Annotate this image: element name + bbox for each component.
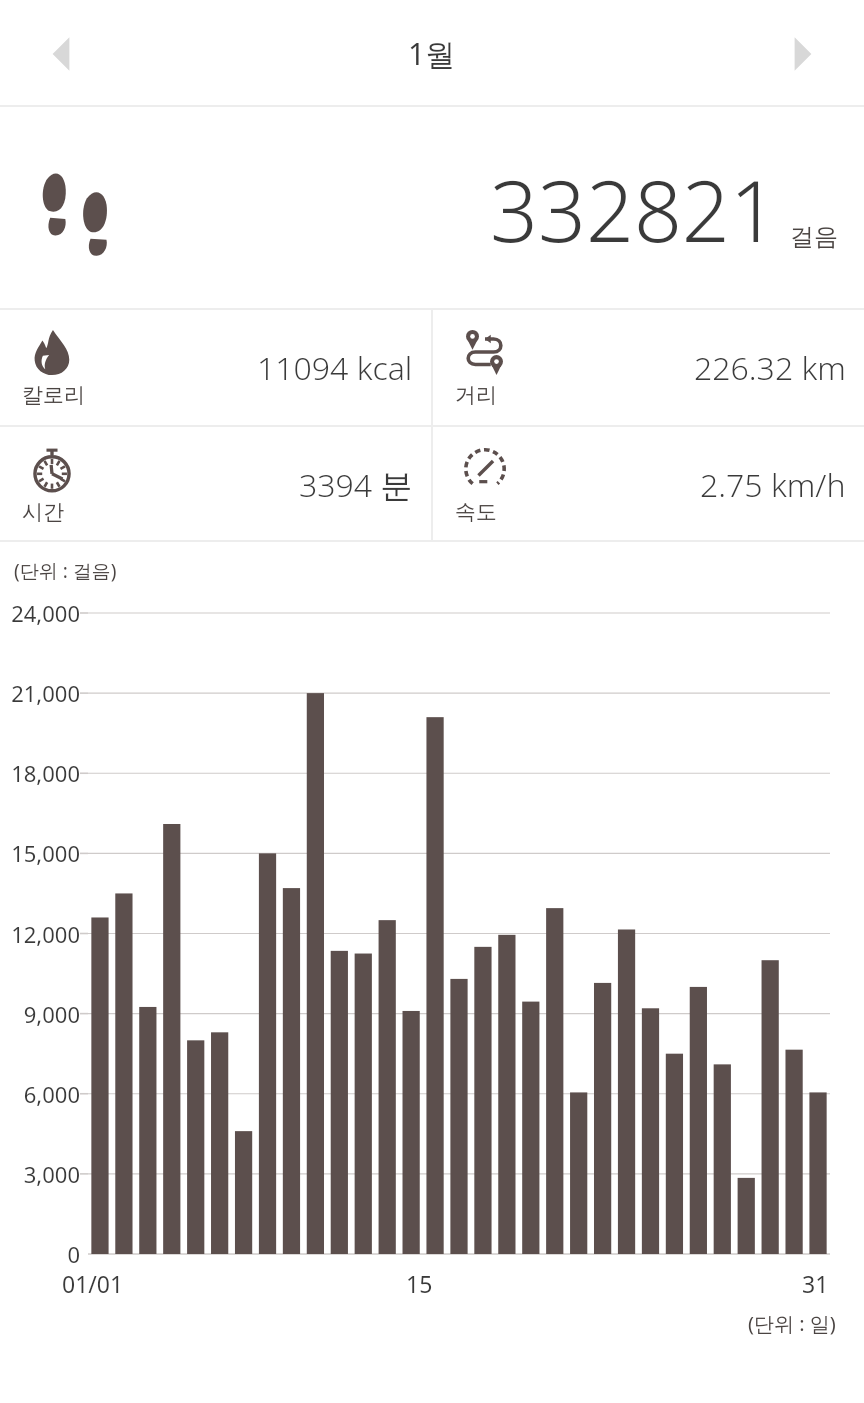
staticText: 칼로리 [22,382,85,408]
staticText: 속도 [455,499,497,525]
button[interactable]: 332821 [0,107,864,310]
button[interactable]: 속도 [433,427,864,542]
staticText: 3394 분 [299,463,413,507]
staticText: 1월 [408,33,456,74]
staticText: 01/01 [62,1268,124,1299]
staticText: 24,000 [6,598,80,628]
staticText: 332821 [490,152,778,266]
button[interactable]: 시간 [0,427,431,542]
staticText: 15,000 [6,838,80,868]
staticText: 226.32 km [694,346,846,390]
staticText: 걸음 [790,222,838,252]
staticText: 거리 [455,382,497,408]
staticText: 31 [802,1268,829,1299]
staticText: 시간 [22,499,64,525]
staticText: 12,000 [6,919,80,949]
staticText: 9,000 [6,999,80,1029]
staticText: 3,000 [6,1159,80,1189]
staticText: 21,000 [6,678,80,708]
button[interactable]: Next month [760,11,846,97]
staticText: (단위 : 걸음) [14,558,117,584]
staticText: 11094 kcal [257,346,413,390]
staticText: 18,000 [6,758,80,788]
staticText: (단위 : 일) [748,1310,836,1337]
button[interactable]: Previous month [18,11,104,97]
staticText: 15 [406,1268,433,1299]
staticText: 0 [6,1239,80,1269]
button[interactable]: 거리 [433,310,864,425]
staticText: 6,000 [6,1079,80,1109]
button[interactable]: 칼로리 [0,310,431,425]
staticText: 2.75 km/h [700,463,846,507]
